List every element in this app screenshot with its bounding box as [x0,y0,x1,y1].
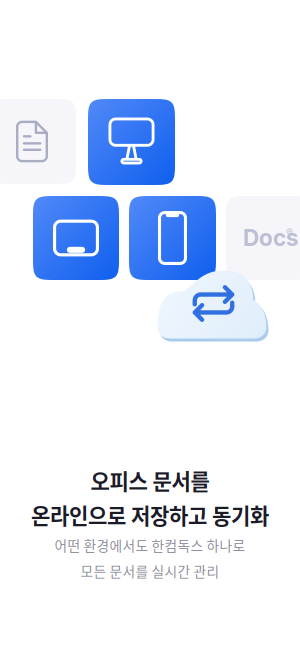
staticText: 온라인으로 저장하고 동기화 [31,499,269,530]
staticText: 모든 문서를 실시간 관리 [80,561,219,581]
staticText: 오피스 문서를 [90,465,209,495]
staticText: Docs [243,224,299,251]
staticText: ® [286,226,293,239]
staticText: 어떤 환경에서도 한컴독스 하나로 [54,535,245,555]
